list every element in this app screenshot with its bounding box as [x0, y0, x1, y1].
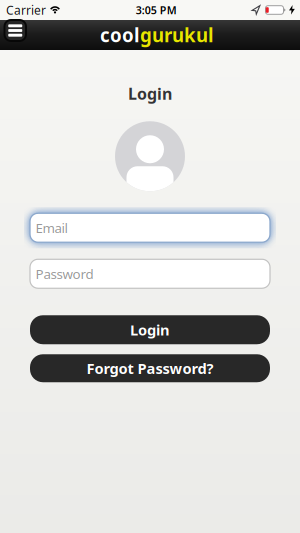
staticText: Carrier	[6, 2, 46, 18]
staticText: Login	[130, 320, 170, 339]
button[interactable]: Login	[30, 315, 270, 344]
staticText: Email	[35, 219, 67, 237]
button[interactable]: Forgot Password?	[30, 354, 270, 382]
staticText: 3:05 PM	[136, 3, 177, 17]
button[interactable]: Menu	[4, 20, 26, 41]
staticText: gurukul	[140, 23, 214, 47]
staticText: cool	[100, 23, 140, 47]
staticText: Password	[35, 265, 93, 283]
staticText: Login	[128, 83, 172, 104]
staticText: Forgot Password?	[86, 358, 213, 378]
button[interactable]: Password	[30, 259, 270, 288]
button[interactable]: Email	[30, 213, 270, 242]
